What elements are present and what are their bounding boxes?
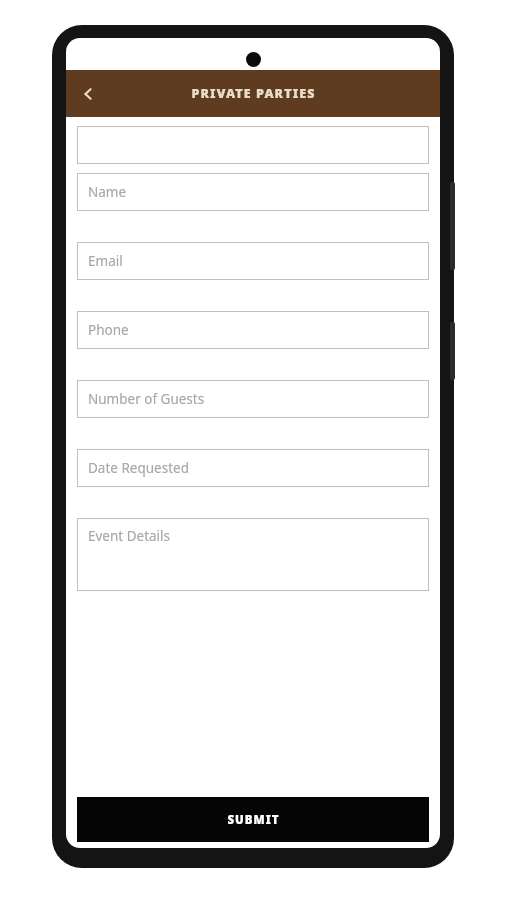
button[interactable]: SUBMIT [77, 797, 429, 842]
button[interactable]: Email [77, 242, 429, 280]
staticText: Name [88, 183, 127, 201]
staticText: PRIVATE PARTIES [191, 85, 316, 102]
button[interactable]: Date Requested [77, 449, 429, 487]
staticText: Number of Guests [88, 390, 205, 408]
staticText: Date Requested [88, 459, 189, 477]
button[interactable]: Name [77, 173, 429, 211]
staticText: SUBMIT [227, 812, 280, 828]
staticText: Event Details [88, 527, 171, 545]
button[interactable]: Back [66, 72, 110, 116]
button[interactable]: Phone [77, 311, 429, 349]
button[interactable]: Event Details [77, 518, 429, 591]
button[interactable] [77, 126, 429, 164]
button[interactable]: Number of Guests [77, 380, 429, 418]
staticText: Email [88, 252, 123, 270]
staticText: Phone [88, 321, 129, 339]
